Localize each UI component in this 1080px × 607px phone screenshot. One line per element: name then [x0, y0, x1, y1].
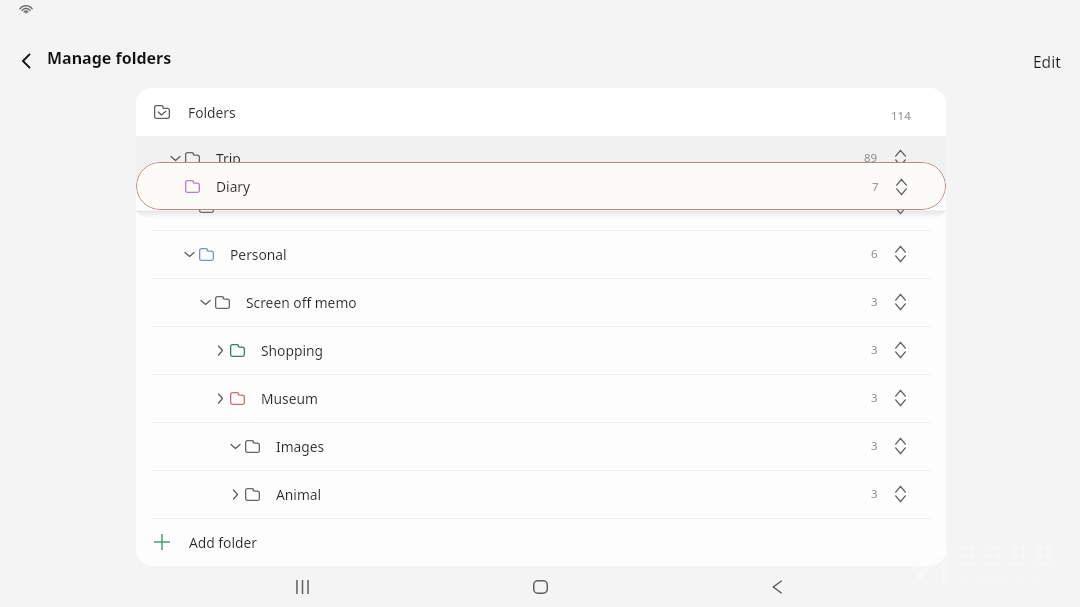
staticText: 3 — [871, 390, 878, 406]
button[interactable]: Home — [520, 567, 560, 607]
button[interactable]: Add folder — [136, 518, 946, 566]
staticText: Edit — [1033, 51, 1061, 72]
button[interactable]: Recents — [282, 567, 322, 607]
button[interactable]: Back — [757, 567, 797, 607]
button[interactable]: Edit — [1026, 46, 1068, 76]
staticText: Add folder — [189, 533, 257, 552]
button[interactable] — [136, 182, 946, 230]
staticText: 114 — [891, 108, 911, 124]
staticText: Personal — [230, 245, 287, 264]
button[interactable]: Diary — [136, 162, 946, 210]
button[interactable]: Animal — [136, 470, 946, 518]
staticText: Trip — [216, 149, 241, 168]
staticText: Manage folders — [47, 47, 172, 69]
staticText: Folders — [188, 103, 236, 122]
button[interactable]: Trip — [136, 134, 946, 182]
button[interactable]: Images — [136, 422, 946, 470]
staticText: 89 — [864, 150, 878, 166]
button[interactable]: Screen off memo — [136, 278, 946, 326]
staticText: 6 — [871, 246, 878, 262]
staticText: Screen off memo — [246, 293, 357, 312]
staticText: Museum — [261, 389, 318, 408]
button[interactable]: Shopping — [136, 326, 946, 374]
button[interactable]: Museum — [136, 374, 946, 422]
button[interactable]: Folders — [136, 88, 946, 136]
staticText: Shopping — [261, 341, 323, 360]
staticText: 3 — [871, 342, 878, 358]
button[interactable]: Back — [12, 46, 41, 75]
staticText: 3 — [871, 438, 878, 454]
staticText: Animal — [276, 485, 322, 504]
button[interactable]: Personal — [136, 230, 946, 278]
staticText: Images — [276, 437, 325, 456]
staticText: Diary — [216, 177, 251, 196]
staticText: 3 — [871, 294, 878, 310]
staticText: 7 — [872, 179, 879, 195]
staticText: 3 — [871, 486, 878, 502]
